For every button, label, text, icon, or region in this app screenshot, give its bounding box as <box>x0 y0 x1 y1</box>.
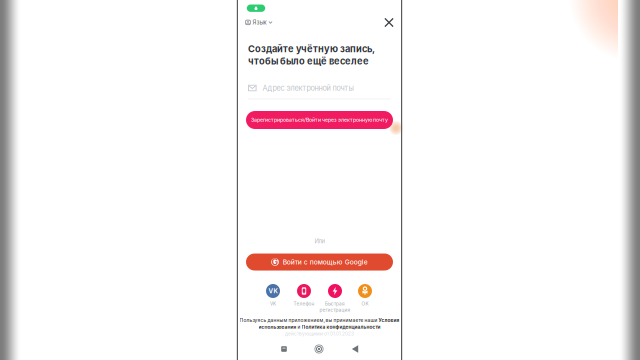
staticText: Создайте учётную запись, <box>248 43 375 54</box>
button[interactable]: Обзор <box>276 341 292 357</box>
button[interactable]: Язык <box>244 16 274 28</box>
button[interactable]: Закрыть <box>380 14 398 31</box>
staticText: VK <box>270 301 276 307</box>
staticText: чтобы было ещё веселее <box>248 55 369 67</box>
button[interactable]: Быстрая регистрация <box>318 284 352 314</box>
staticText: Быстрая <box>325 301 345 307</box>
button[interactable]: Назад <box>347 340 363 358</box>
staticText: действующими от 01.01.2023 <box>285 331 354 337</box>
staticText: Пользуясь данным приложением, вы принима… <box>239 317 399 323</box>
staticText: Зарегистрироваться/Войти через электронн… <box>251 117 388 123</box>
button[interactable]: VK <box>256 284 290 314</box>
staticText: Или <box>314 237 324 245</box>
staticText: Телефон <box>293 301 314 307</box>
button[interactable]: Зарегистрироваться/Войти через электронн… <box>246 111 393 129</box>
staticText: использования и Политика конфиденциально… <box>258 324 380 330</box>
button[interactable]: G <box>246 253 393 270</box>
button[interactable]: OK <box>348 284 382 314</box>
staticText: Войти с помощью Google <box>283 258 368 266</box>
button[interactable]: Домой <box>310 340 328 358</box>
staticText: VK <box>268 287 277 295</box>
staticText: G <box>271 257 278 267</box>
staticText: регистрация <box>319 307 350 313</box>
staticText: Язык <box>252 19 266 26</box>
staticText: Адрес электронной почты <box>263 84 354 92</box>
button[interactable]: Телефон <box>287 284 321 314</box>
staticText: OK <box>361 301 368 307</box>
